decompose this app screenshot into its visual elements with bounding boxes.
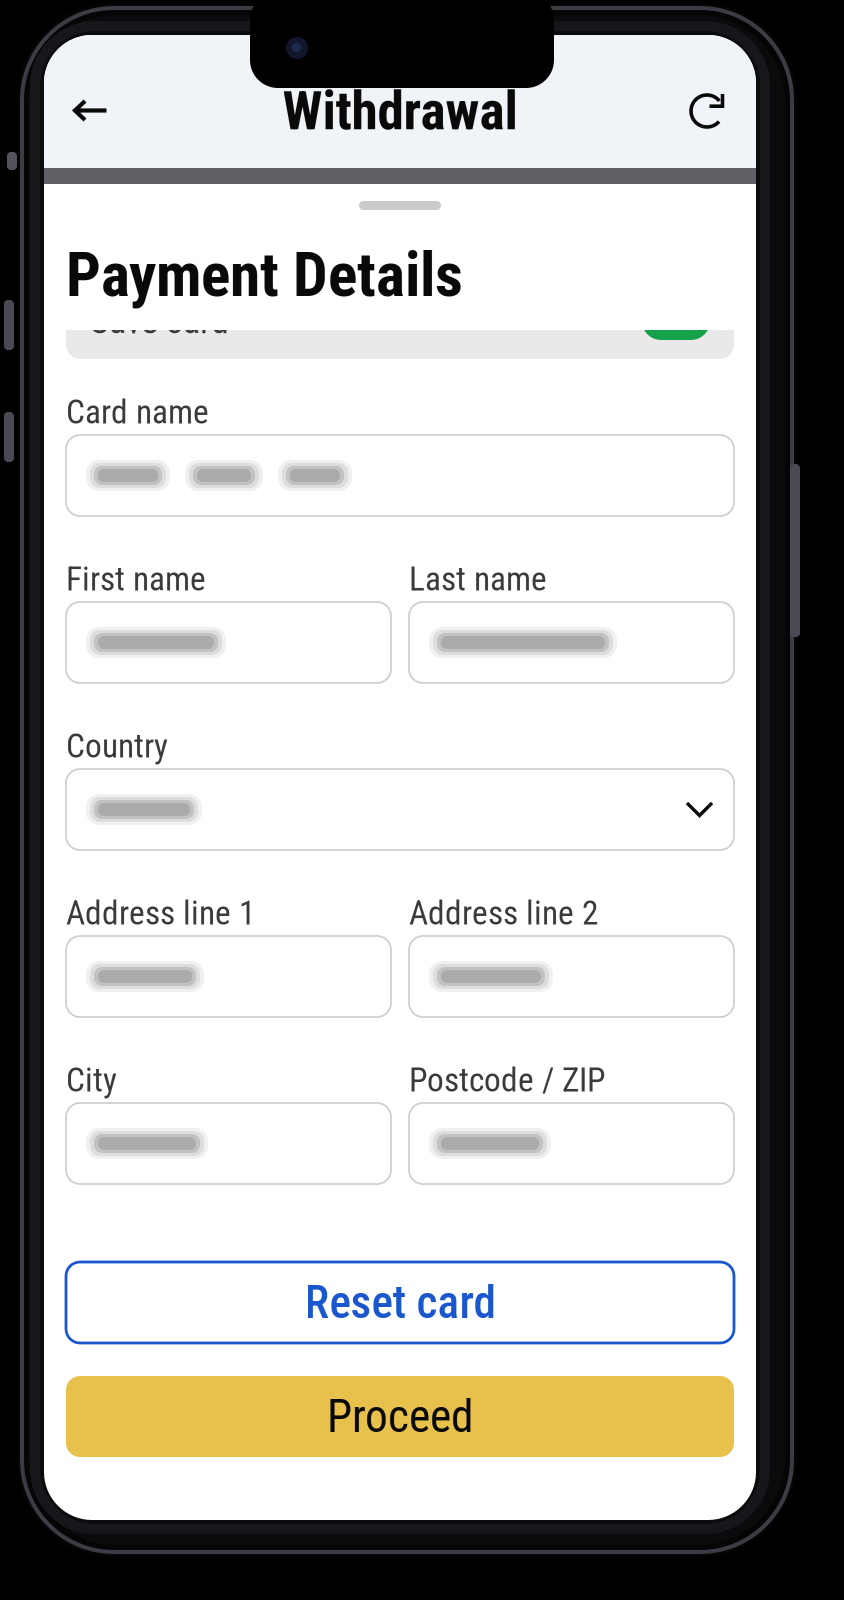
staticText: Card name bbox=[66, 392, 209, 432]
staticText: Payment Details bbox=[66, 239, 463, 311]
staticText: Postcode / ZIP bbox=[409, 1060, 605, 1100]
staticText: Last name bbox=[409, 559, 547, 599]
staticText: Reset card bbox=[304, 1276, 495, 1329]
button[interactable]: Back bbox=[55, 81, 127, 141]
button[interactable]: Postcode / ZIP bbox=[409, 1067, 734, 1184]
button[interactable]: Address line 1 bbox=[66, 900, 391, 1017]
button[interactable]: Address line 2 bbox=[409, 900, 734, 1017]
button[interactable]: Card name bbox=[66, 399, 734, 516]
button[interactable]: Refresh bbox=[673, 81, 743, 141]
staticText: Save card bbox=[90, 300, 229, 342]
button[interactable]: First name bbox=[66, 566, 391, 683]
button[interactable]: Country bbox=[66, 733, 734, 850]
button[interactable]: Last name bbox=[409, 566, 734, 683]
button[interactable]: Proceed bbox=[66, 1376, 734, 1457]
staticText: Address line 2 bbox=[409, 893, 598, 933]
button[interactable]: Reset card bbox=[66, 1262, 734, 1343]
staticText: Country bbox=[66, 726, 168, 766]
staticText: Proceed bbox=[327, 1390, 473, 1443]
staticText: City bbox=[66, 1060, 117, 1100]
button[interactable]: City bbox=[66, 1067, 391, 1184]
staticText: Withdrawal bbox=[282, 80, 517, 142]
staticText: Address line 1 bbox=[66, 893, 255, 933]
staticText: First name bbox=[66, 559, 206, 599]
